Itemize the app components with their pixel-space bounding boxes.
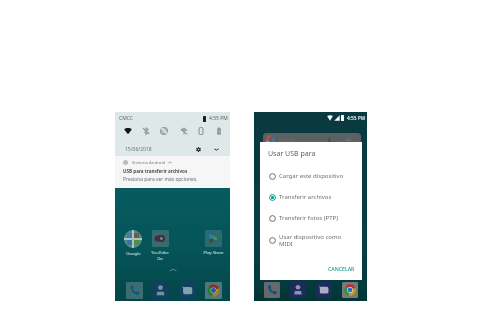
staticText: Cargar este dispositivo: [279, 172, 344, 180]
button[interactable]: Transferir archivos: [269, 189, 361, 205]
staticText: Presiona para ver más opciones.: [123, 176, 198, 183]
staticText: Transferir fotos (PTP): [279, 214, 338, 222]
button[interactable]: Battery saver: [212, 124, 226, 138]
button[interactable]: Auto rotate: [194, 124, 208, 138]
staticText: Usar dispositivo como MIDI: [279, 233, 342, 248]
button[interactable]: Location off: [177, 124, 191, 138]
button[interactable]: Cargar este dispositivo: [269, 168, 361, 184]
button[interactable]: Chrome: [342, 282, 358, 298]
button[interactable]: Google: [118, 230, 148, 256]
staticText: YouTube Go: [151, 249, 169, 261]
button[interactable]: Transferir fotos (PTP): [269, 210, 361, 226]
button[interactable]: Do not disturb: [157, 124, 171, 138]
staticText: Buscar: [279, 137, 296, 144]
staticText: Transferir archivos: [279, 193, 332, 201]
button[interactable]: Messages: [316, 282, 332, 298]
button[interactable]: YouTube Go: [145, 230, 175, 261]
button[interactable]: Settings: [193, 144, 203, 154]
button[interactable]: Bluetooth off: [139, 124, 153, 138]
staticText: 15/06/2018: [125, 146, 152, 153]
staticText: CANCELAR: [328, 265, 355, 272]
button[interactable]: Sistema Android: [115, 156, 230, 188]
staticText: CMCC: [119, 115, 133, 122]
staticText: Sistema Android: [132, 159, 166, 165]
staticText: Google: [126, 250, 141, 256]
button[interactable]: Messages: [179, 282, 196, 299]
button[interactable]: Wi-Fi: [121, 124, 135, 138]
button[interactable]: Contacts: [290, 282, 306, 298]
button[interactable]: CANCELAR: [328, 265, 355, 272]
button[interactable]: Phone: [264, 282, 280, 298]
button[interactable]: Expand: [211, 144, 221, 154]
staticText: Play Store: [203, 249, 224, 255]
button[interactable]: Search: [263, 133, 361, 147]
staticText: 4:55 PM: [347, 115, 366, 122]
button[interactable]: Play Store: [198, 230, 228, 255]
button[interactable]: Chrome: [205, 282, 222, 299]
button[interactable]: Phone: [126, 282, 143, 299]
button[interactable]: Usar dispositivo como MIDI: [269, 230, 361, 250]
staticText: Usar USB para: [268, 149, 316, 159]
staticText: 4:55 PM: [209, 115, 228, 122]
button[interactable]: Contacts: [152, 282, 169, 299]
staticText: USB para transferir archivos: [123, 168, 188, 174]
